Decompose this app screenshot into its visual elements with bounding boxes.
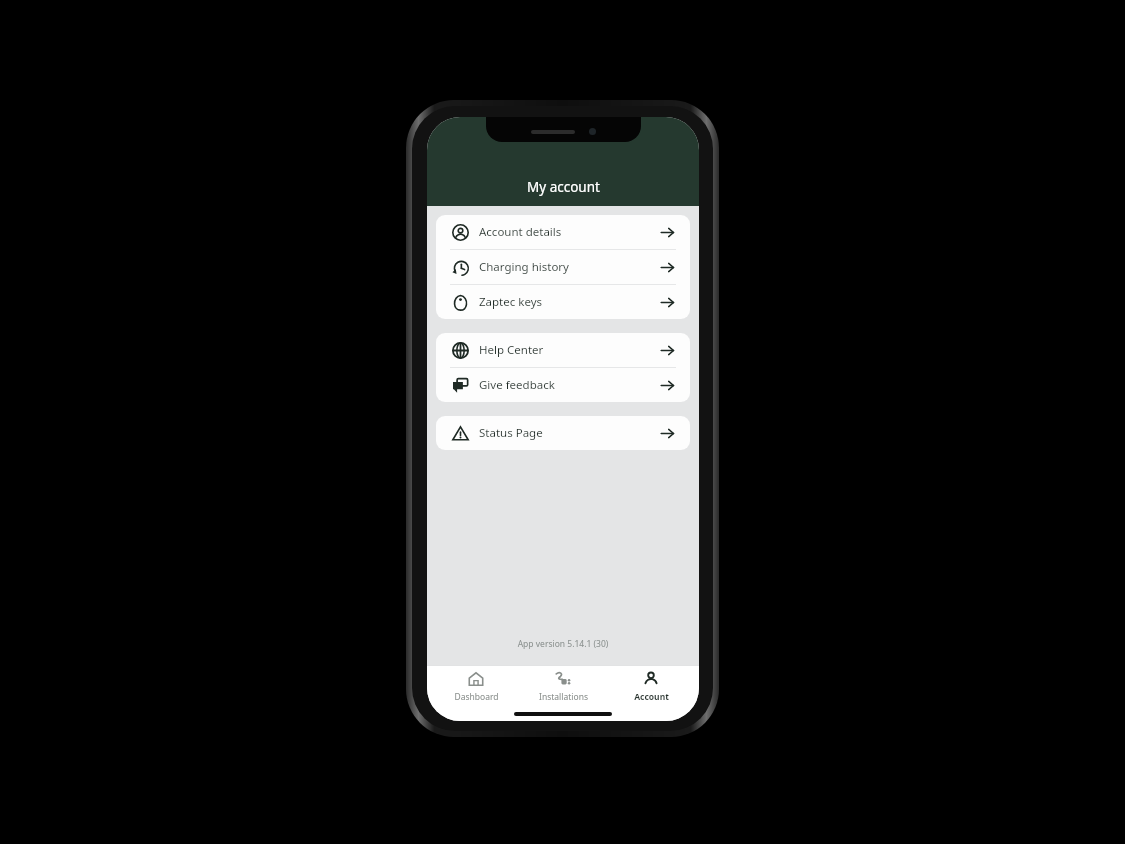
button[interactable]: Give feedback [436, 368, 690, 402]
staticText: Status Page [479, 425, 543, 441]
staticText: My account [527, 178, 600, 196]
staticText: Account details [479, 224, 562, 240]
staticText: Account [634, 691, 669, 703]
button[interactable]: Dashboard [437, 665, 515, 709]
button[interactable]: Charging history [436, 250, 690, 284]
staticText: Help Center [479, 342, 544, 358]
button[interactable]: Account [612, 665, 690, 709]
staticText: Dashboard [454, 691, 499, 703]
staticText: App version 5.14.1 (30) [436, 638, 690, 650]
button[interactable]: Account details [436, 215, 690, 249]
staticText: Zaptec keys [479, 294, 543, 310]
button[interactable]: Help Center [436, 333, 690, 367]
button[interactable]: Zaptec keys [436, 285, 690, 319]
staticText: Charging history [479, 259, 569, 275]
button[interactable]: Status Page [436, 416, 690, 450]
button[interactable]: Installations [524, 665, 602, 709]
staticText: Installations [539, 691, 588, 703]
staticText: Give feedback [479, 377, 555, 393]
